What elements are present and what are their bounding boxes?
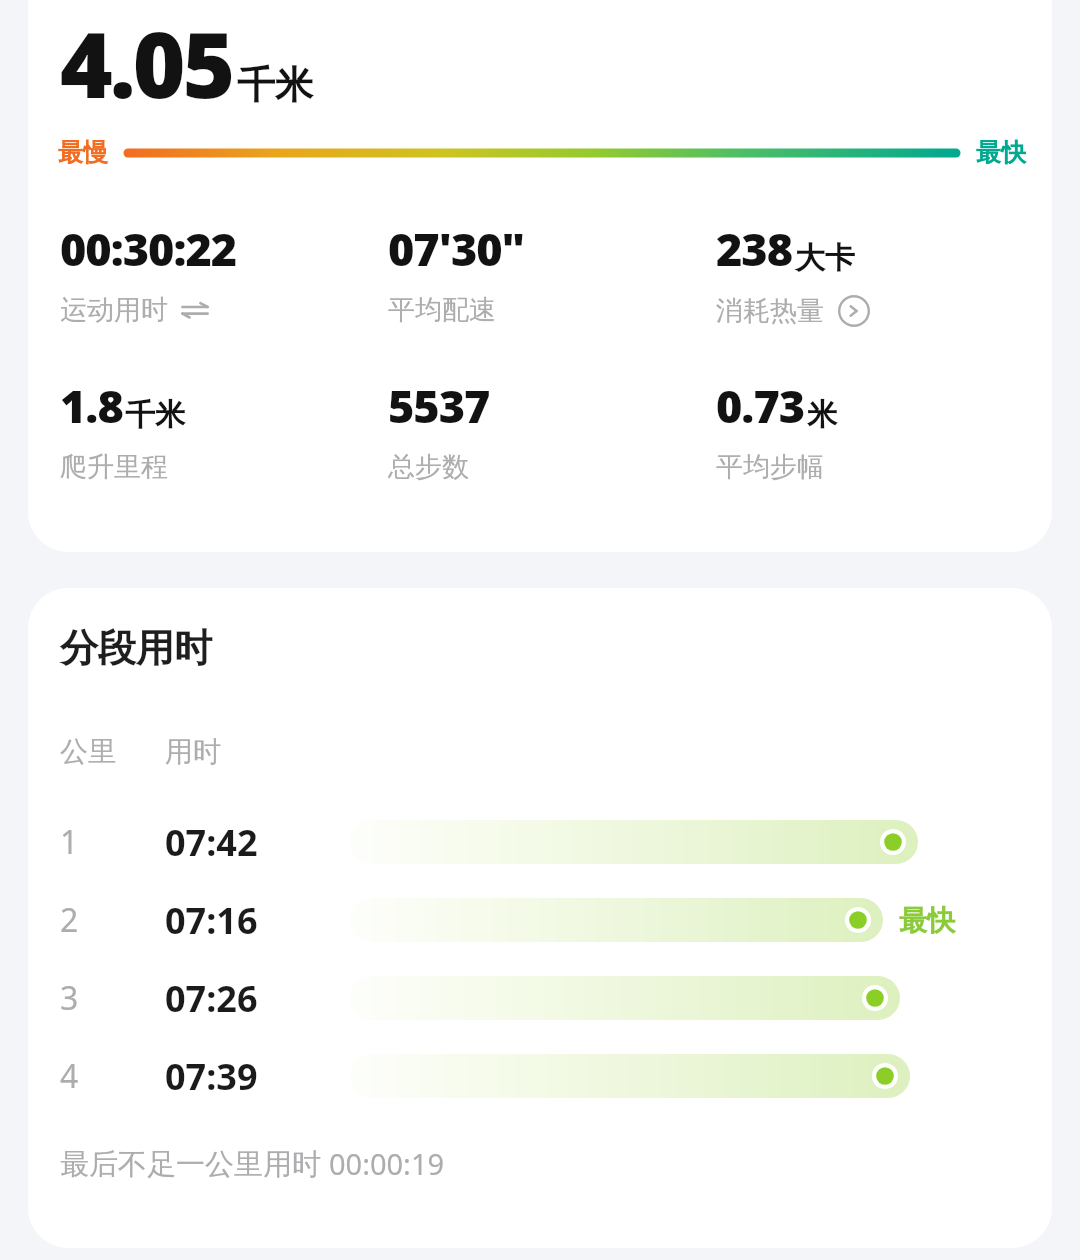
staticText: 5537 (388, 375, 490, 436)
button[interactable]: Calories details (836, 293, 872, 329)
staticText: 总步数 (388, 450, 469, 484)
staticText: 2 (60, 898, 79, 942)
staticText: 米 (807, 396, 837, 434)
staticText: 爬升里程 (60, 450, 168, 484)
staticText: 07:39 (165, 1052, 258, 1101)
staticText: 消耗热量 (716, 294, 824, 328)
staticText: 00:00:19 (329, 1144, 445, 1183)
button[interactable]: 4 (28, 1037, 1052, 1115)
staticText: 运动用时 (60, 293, 168, 327)
staticText: 07'30" (388, 218, 525, 279)
staticText: 千米 (237, 61, 313, 109)
staticText: 千米 (125, 396, 185, 434)
staticText: 0.73 (716, 375, 805, 436)
staticText: 4 (60, 1054, 79, 1098)
staticText: 07:16 (165, 896, 258, 945)
staticText: 1 (60, 820, 79, 864)
staticText: 分段用时 (60, 624, 212, 672)
button[interactable]: 2 (28, 881, 1052, 959)
staticText: 4.05 (60, 2, 233, 125)
button[interactable]: Switch time display (178, 293, 212, 327)
button[interactable]: 3 (28, 959, 1052, 1037)
staticText: 平均步幅 (716, 450, 824, 484)
staticText: 最快 (899, 903, 955, 938)
staticText: 最快 (976, 137, 1026, 168)
staticText: 最后不足一公里用时 (60, 1143, 329, 1183)
staticText: 平均配速 (388, 293, 496, 327)
staticText: 00:30:22 (60, 218, 237, 279)
staticText: 238 (716, 218, 793, 279)
staticText: 1.8 (60, 375, 123, 436)
staticText: 3 (60, 976, 79, 1020)
staticText: 公里 (60, 734, 116, 769)
staticText: 大卡 (795, 239, 855, 277)
staticText: 07:42 (165, 818, 258, 867)
staticText: 最慢 (58, 137, 108, 168)
button[interactable]: 1 (28, 803, 1052, 881)
staticText: 07:26 (165, 974, 258, 1023)
staticText: 用时 (165, 734, 221, 769)
